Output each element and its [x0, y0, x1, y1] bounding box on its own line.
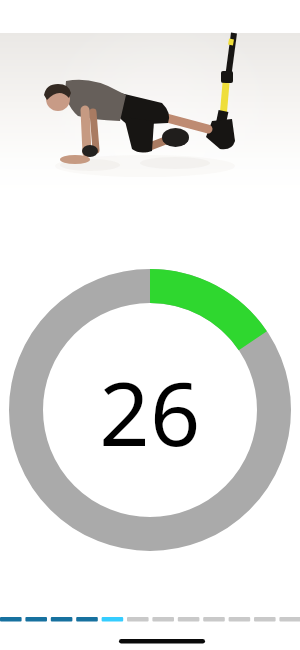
button[interactable]: [9, 269, 291, 551]
staticText: 26: [99, 352, 201, 472]
button[interactable]: [0, 33, 300, 193]
